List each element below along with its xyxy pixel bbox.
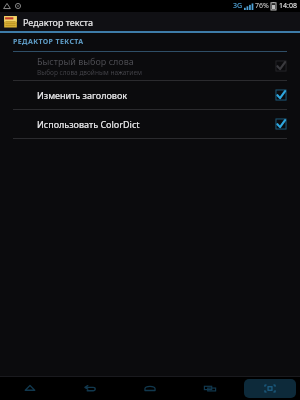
button[interactable]: Toggle	[275, 89, 287, 101]
button[interactable]: App icon	[0, 12, 300, 31]
staticText: 3G	[233, 1, 243, 11]
staticText: 76%	[255, 1, 269, 11]
button[interactable]: Home	[120, 377, 180, 400]
button[interactable]: Быстрый выбор слова	[0, 52, 300, 80]
button[interactable]: Fullscreen	[240, 377, 300, 400]
button[interactable]: Toggle	[275, 118, 287, 130]
button[interactable]: Up	[0, 377, 60, 400]
staticText: 14:08	[279, 1, 297, 11]
staticText: Использовать ColorDict	[37, 118, 140, 130]
staticText: Редактор текста	[23, 16, 94, 28]
staticText: Изменить заголовок	[37, 89, 128, 101]
button[interactable]: Toggle	[275, 60, 287, 72]
staticText: РЕДАКТОР ТЕКСТА	[13, 37, 84, 47]
staticText: Выбор слова двойным нажатием	[37, 68, 142, 77]
other: App icon	[3, 14, 18, 29]
button[interactable]: Back	[60, 377, 120, 400]
staticText: Быстрый выбор слова	[37, 55, 134, 67]
button[interactable]: Использовать ColorDict	[0, 110, 300, 138]
button[interactable]: Recents	[180, 377, 240, 400]
button[interactable]: Изменить заголовок	[0, 81, 300, 109]
